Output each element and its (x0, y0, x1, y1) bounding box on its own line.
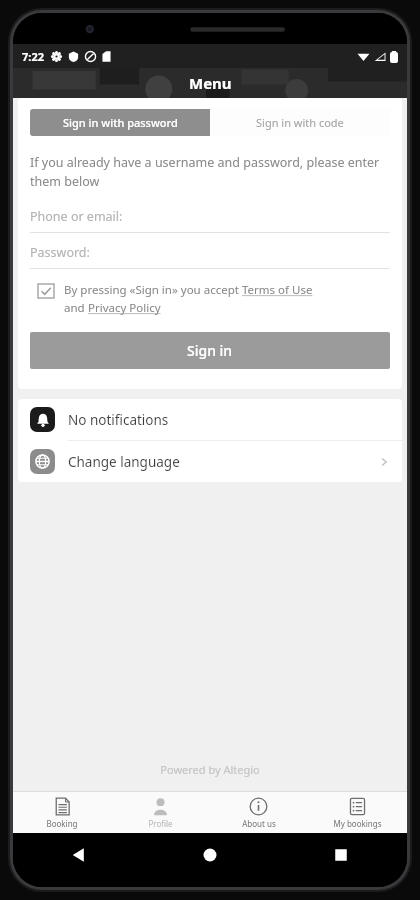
button[interactable]: By pressing «Sign in» you accept (30, 282, 390, 316)
button[interactable]: Sign in with code (210, 109, 390, 136)
staticText: 7:22 (22, 49, 44, 64)
button[interactable]: About us (209, 792, 308, 833)
button[interactable]: Sign in with password (30, 109, 210, 136)
staticText: Sign in with code (256, 115, 344, 130)
button[interactable]: Sign in (30, 332, 390, 369)
staticText: Sign in with password (63, 115, 178, 130)
staticText: Profile (148, 818, 173, 829)
button[interactable]: Change language (18, 441, 402, 482)
button[interactable]: Home (198, 843, 222, 867)
staticText: About us (242, 818, 276, 829)
staticText: Booking (46, 818, 78, 829)
button[interactable]: No notifications (18, 399, 402, 440)
staticText: No notifications (68, 411, 169, 429)
staticText: If you already have a username and passw… (30, 154, 390, 190)
button[interactable]: Profile (111, 792, 209, 833)
staticText: Password: (30, 244, 90, 261)
button[interactable]: Booking (13, 792, 111, 833)
button[interactable]: Terms of Use (242, 282, 313, 298)
staticText: By pressing «Sign in» you accept (64, 282, 242, 298)
button[interactable]: Back (67, 843, 91, 867)
staticText: Sign in (187, 341, 233, 360)
button[interactable]: Privacy Policy (88, 300, 161, 316)
staticText: Change language (68, 453, 180, 471)
button[interactable]: My bookings (308, 792, 407, 833)
button[interactable]: Recents (329, 843, 353, 867)
staticText: Menu (189, 73, 232, 93)
staticText: Powered by Altegio (160, 762, 260, 777)
staticText: My bookings (333, 818, 382, 829)
staticText: and (64, 300, 88, 316)
staticText: Phone or email: (30, 208, 123, 225)
